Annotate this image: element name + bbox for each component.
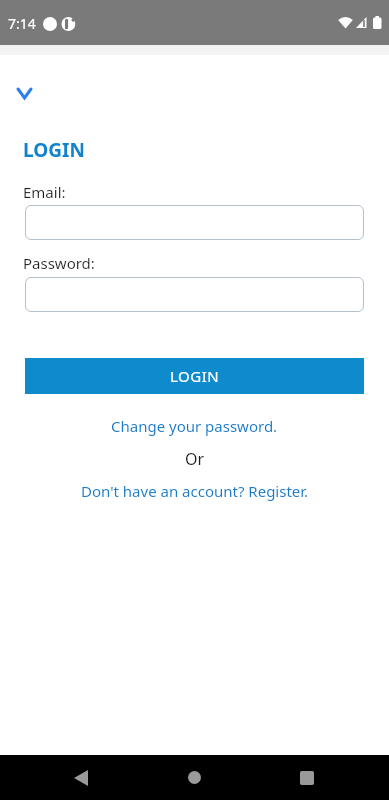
button[interactable] (25, 205, 364, 240)
staticText: Password: (23, 253, 95, 273)
button[interactable] (172, 755, 217, 800)
staticText: 7:14 (8, 14, 36, 33)
staticText: Or (185, 448, 205, 470)
staticText: Email: (23, 182, 66, 202)
button[interactable]: Don't have an account? Register. (81, 481, 309, 501)
button[interactable] (10, 79, 38, 107)
button[interactable] (284, 755, 329, 800)
button[interactable] (25, 277, 364, 312)
staticText: LOGIN (23, 137, 85, 163)
button[interactable] (58, 755, 103, 800)
button[interactable]: LOGIN (25, 358, 364, 394)
button[interactable]: Change your password. (111, 416, 278, 436)
staticText: LOGIN (170, 366, 220, 386)
